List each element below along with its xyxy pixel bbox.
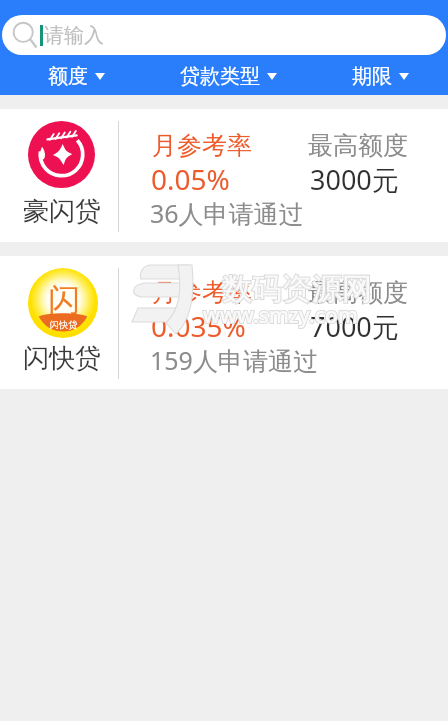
staticText: www.smzy.com: [203, 301, 358, 330]
staticText: 额度: [48, 64, 88, 89]
button[interactable]: 额度: [0, 60, 152, 92]
button[interactable]: 期限: [304, 60, 448, 92]
staticText: 期限: [352, 64, 392, 89]
staticText: 月参考率: [152, 277, 252, 308]
staticText: 最高额度: [308, 130, 408, 161]
staticText: 159人申请通过: [150, 343, 318, 377]
button[interactable]: 豪闪贷: [0, 109, 448, 242]
staticText: 7000元: [310, 308, 399, 345]
staticText: 月参考率: [152, 130, 252, 161]
button[interactable]: 请输入: [2, 15, 446, 55]
staticText: 贷款类型: [180, 64, 260, 89]
staticText: 闪: [48, 280, 80, 320]
staticText: 数码资源网: [222, 270, 372, 308]
button[interactable]: 贷款类型: [152, 60, 304, 92]
button[interactable]: 闪: [0, 256, 448, 389]
staticText: 36人申请通过: [150, 196, 304, 230]
staticText: 豪闪贷: [23, 195, 101, 228]
staticText: 0.035%: [151, 307, 246, 345]
staticText: www.smzy.com: [203, 301, 358, 330]
staticText: 闪快贷: [23, 342, 101, 375]
staticText: 0.05%: [151, 160, 230, 198]
staticText: 闪快贷: [50, 319, 77, 330]
staticText: 数码资源网: [222, 270, 372, 308]
staticText: 请输入: [44, 23, 104, 48]
staticText: 最高额度: [308, 277, 408, 308]
staticText: 3000元: [310, 161, 399, 198]
